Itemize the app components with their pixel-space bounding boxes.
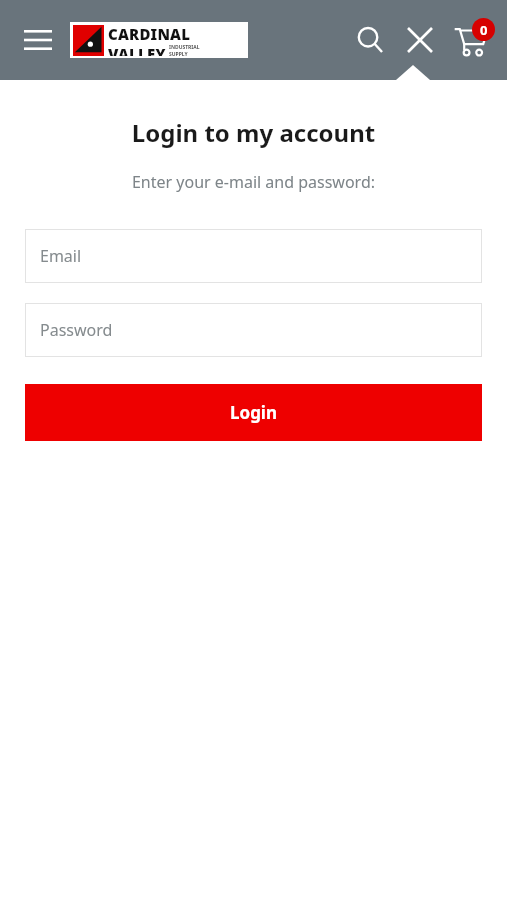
button[interactable]: Password: [25, 303, 482, 357]
staticText: Login to my account: [0, 116, 507, 149]
button[interactable]: Cart, 0 items: [445, 14, 497, 66]
staticText: Email: [40, 245, 82, 267]
staticText: 0: [480, 21, 488, 39]
button[interactable]: Close: [397, 17, 443, 63]
button[interactable]: Email: [25, 229, 482, 283]
staticText: INDUSTRIAL: [169, 44, 200, 51]
staticText: VALLEY: [108, 44, 166, 56]
button[interactable]: Search: [347, 17, 393, 63]
button[interactable]: Cardinal Valley Industrial Supply: [70, 22, 248, 58]
button[interactable]: Menu: [16, 18, 60, 62]
staticText: Login: [230, 401, 278, 424]
staticText: Password: [40, 319, 113, 341]
staticText: SUPPLY: [169, 51, 188, 56]
button[interactable]: Login: [25, 384, 482, 441]
staticText: Enter your e-mail and password:: [0, 171, 507, 193]
staticText: CARDINAL: [108, 24, 191, 44]
